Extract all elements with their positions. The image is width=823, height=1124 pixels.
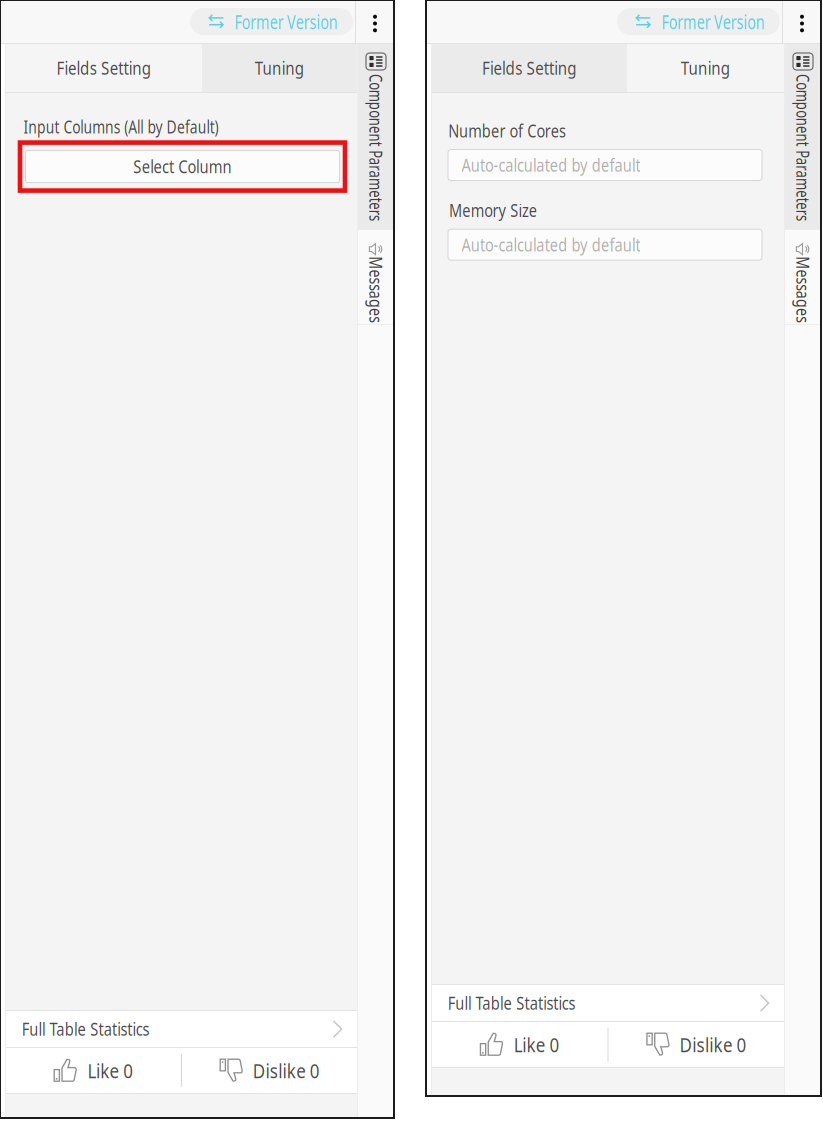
button[interactable]: Former Version	[190, 8, 353, 35]
button[interactable]: Like 0	[432, 1022, 607, 1067]
button[interactable]: More options	[356, 0, 394, 43]
staticText: Like 0	[83, 1057, 136, 1084]
button[interactable]: Fields Setting	[432, 44, 627, 92]
button[interactable]: Fields Setting	[6, 44, 202, 92]
button[interactable]: Full Table Statistics	[432, 985, 784, 1021]
staticText: Messages	[335, 278, 416, 301]
button[interactable]: Component Parameters	[785, 44, 821, 229]
button[interactable]: Like 0	[6, 1048, 181, 1093]
button[interactable]: Tuning	[627, 44, 784, 92]
staticText: Memory Size	[440, 199, 545, 222]
staticText: Dislike 0	[674, 1031, 752, 1058]
staticText: Input Columns (All by Default)	[0, 115, 243, 138]
staticText: Select Column	[124, 155, 240, 178]
staticText: Auto-calculated by default	[444, 154, 657, 177]
staticText: Component Parameters	[705, 136, 823, 159]
button[interactable]: More options	[783, 0, 821, 43]
button[interactable]: Dislike 0	[182, 1048, 357, 1093]
button[interactable]: Messages	[785, 230, 821, 324]
staticText: Former Version	[214, 8, 357, 35]
staticText: Messages	[762, 278, 823, 301]
button[interactable]: Tuning	[202, 44, 357, 92]
staticText: Full Table Statistics	[436, 991, 587, 1014]
staticText: Component Parameters	[278, 136, 473, 159]
staticText: Tuning	[251, 56, 308, 79]
button[interactable]: Messages	[358, 230, 394, 324]
staticText: Dislike 0	[247, 1057, 325, 1084]
button[interactable]: Full Table Statistics	[6, 1011, 357, 1047]
staticText: Fields Setting	[49, 56, 158, 79]
staticText: Number of Cores	[437, 119, 577, 142]
staticText: Like 0	[510, 1031, 563, 1058]
button[interactable]: Former Version	[617, 8, 780, 35]
staticText: Former Version	[641, 8, 784, 35]
staticText: Tuning	[677, 56, 734, 79]
staticText: Full Table Statistics	[10, 1017, 161, 1040]
staticText: Fields Setting	[475, 56, 584, 79]
button[interactable]: Select Column	[25, 151, 339, 183]
button[interactable]: Dislike 0	[608, 1022, 784, 1067]
button[interactable]: Component Parameters	[358, 44, 394, 229]
staticText: Auto-calculated by default	[444, 233, 657, 256]
